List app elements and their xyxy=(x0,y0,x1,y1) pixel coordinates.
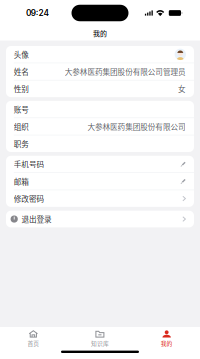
staticText: 大参林医药集团股份有限公司管理员 xyxy=(65,66,186,77)
button[interactable]: 头像 xyxy=(6,46,194,63)
staticText: 账号 xyxy=(14,104,29,115)
staticText: 性别 xyxy=(14,83,29,94)
button[interactable]: 手机号码 xyxy=(6,156,194,172)
staticText: 修改密码 xyxy=(14,193,44,204)
button[interactable]: 我的 xyxy=(0,26,200,40)
button[interactable]: 邮箱 xyxy=(6,173,194,190)
staticText: 我的 xyxy=(161,339,173,347)
staticText: 知识库 xyxy=(91,339,109,347)
staticText: 首页 xyxy=(27,339,39,347)
button[interactable]: 知识库 xyxy=(67,330,133,347)
button[interactable]: 我的 xyxy=(133,330,200,347)
staticText: 女 xyxy=(178,83,186,94)
staticText: 09:24 xyxy=(26,8,49,18)
staticText: 我的 xyxy=(93,28,107,38)
staticText: 头像 xyxy=(14,49,29,60)
staticText: 手机号码 xyxy=(14,159,44,170)
button[interactable]: 姓名 xyxy=(6,63,194,80)
button[interactable]: 性别 xyxy=(6,80,194,97)
staticText: 退出登录 xyxy=(21,213,52,224)
staticText: 姓名 xyxy=(14,66,29,77)
button[interactable]: 退出登录 xyxy=(6,211,194,227)
button[interactable]: 首页 xyxy=(0,330,67,347)
staticText: 邮箱 xyxy=(14,176,29,187)
button[interactable]: 组织 xyxy=(6,118,194,135)
button[interactable]: 职务 xyxy=(6,135,194,152)
staticText: 大参林医药集团股份有限公司 xyxy=(87,121,186,132)
button[interactable]: 账号 xyxy=(6,101,194,118)
staticText: 组织 xyxy=(14,121,29,132)
staticText: 职务 xyxy=(14,138,29,149)
button[interactable]: 修改密码 xyxy=(6,190,194,207)
